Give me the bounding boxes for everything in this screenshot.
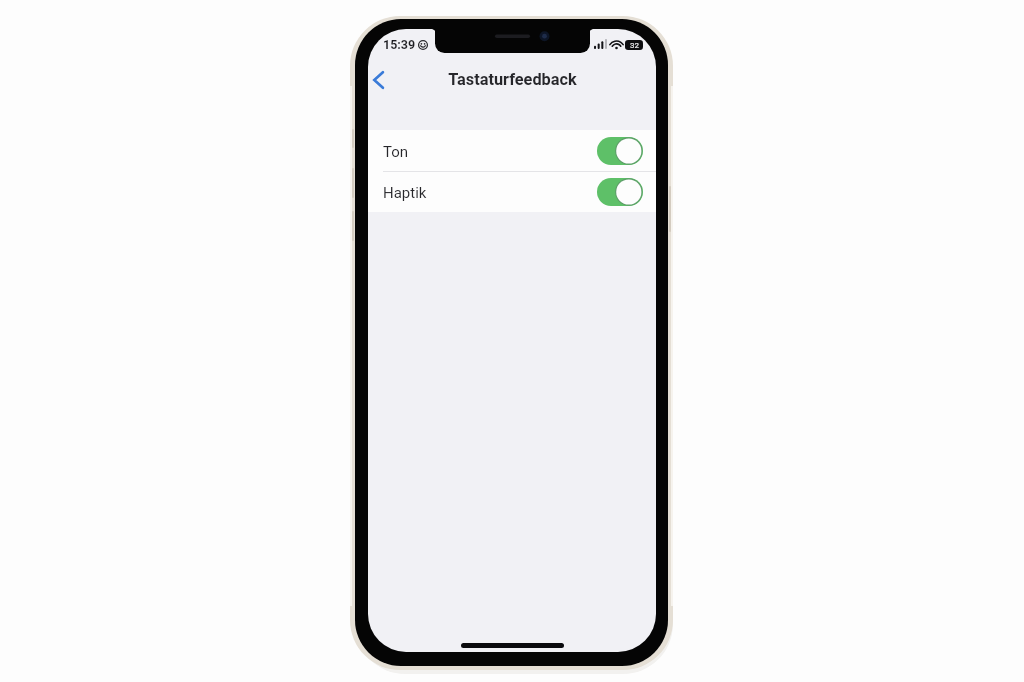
button[interactable]: Haptik an [597,178,643,206]
staticText: Ton [383,143,409,161]
staticText: 15:39 [383,37,416,52]
staticText: Haptik [383,184,427,202]
button[interactable]: Haptik [368,172,656,212]
staticText: 32 [630,41,639,50]
button[interactable]: Ton [368,130,656,171]
staticText: Tastaturfeedback [448,70,577,89]
button[interactable]: Back [368,59,404,103]
button[interactable]: Ton an [597,137,643,165]
